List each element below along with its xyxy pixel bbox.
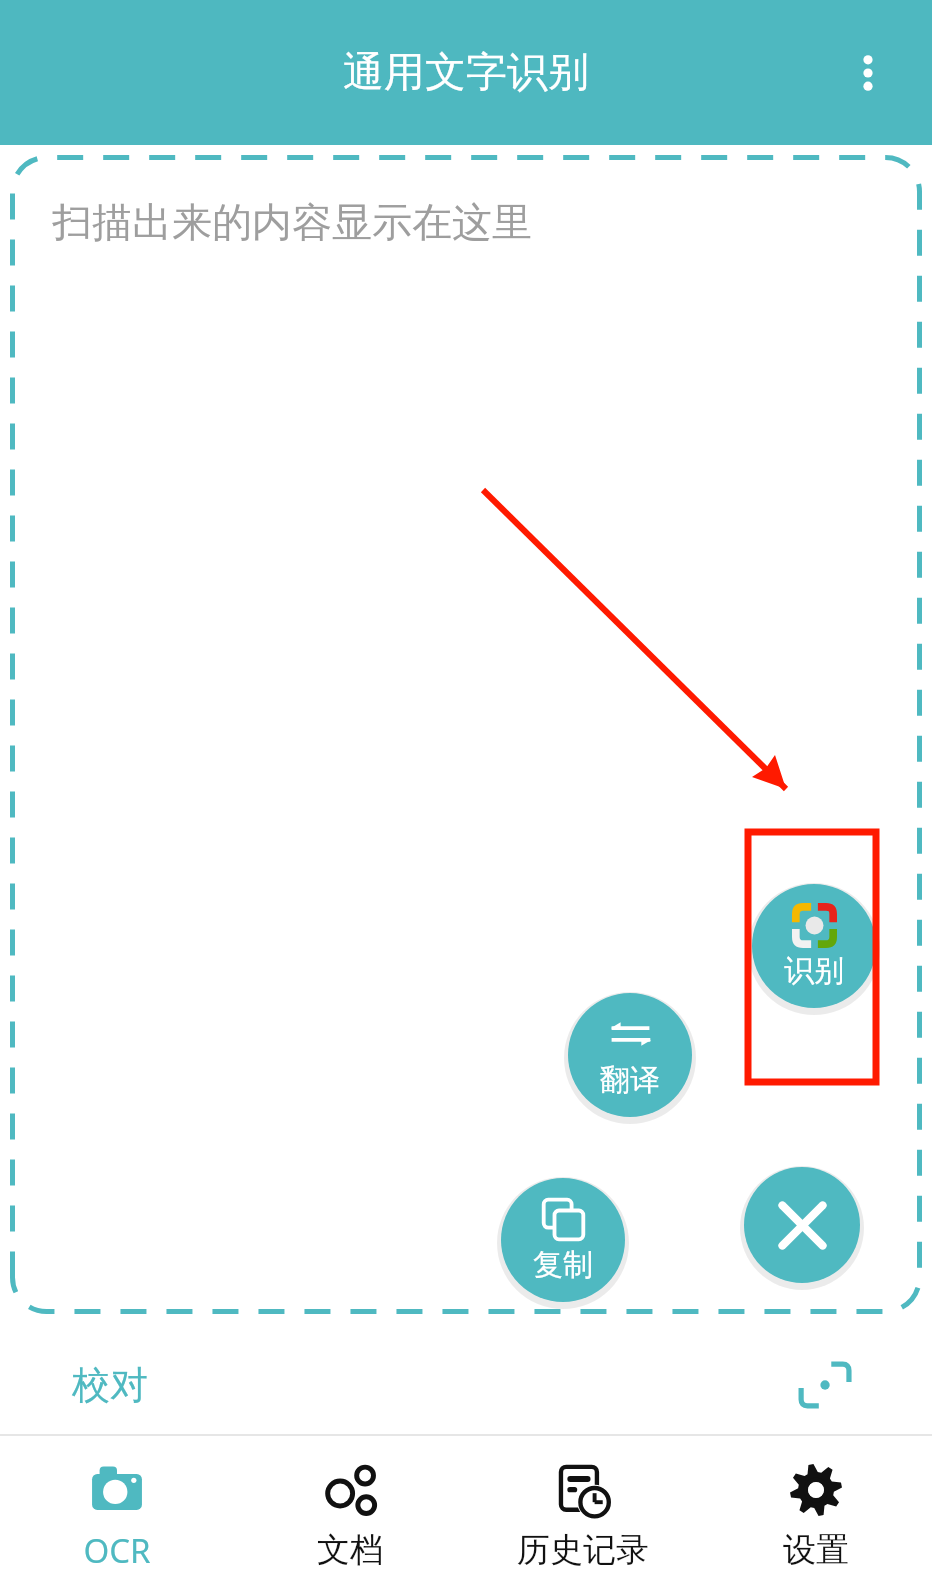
staticText: 历史记录: [517, 1529, 649, 1571]
staticText: 翻译: [600, 1061, 660, 1099]
button[interactable]: 历史记录: [466, 1436, 699, 1596]
staticText: 设置: [783, 1529, 849, 1571]
button[interactable]: More options: [832, 37, 904, 109]
button[interactable]: 文档: [233, 1436, 466, 1596]
staticText: 扫描出来的内容显示在这里: [52, 197, 532, 247]
button[interactable]: 设置: [699, 1436, 932, 1596]
button[interactable]: 翻译: [563, 988, 697, 1122]
staticText: 通用文字识别: [343, 47, 589, 99]
button[interactable]: 复制: [496, 1173, 630, 1307]
button[interactable]: 识别: [747, 879, 881, 1013]
button[interactable]: Close: [739, 1162, 865, 1288]
button[interactable]: Fullscreen: [788, 1349, 860, 1421]
staticText: 识别: [784, 952, 844, 990]
staticText: 文档: [317, 1529, 383, 1571]
staticText: 校对: [72, 1361, 148, 1409]
staticText: 复制: [533, 1246, 593, 1284]
button[interactable]: OCR: [0, 1436, 233, 1596]
staticText: OCR: [83, 1528, 151, 1573]
button[interactable]: 校对: [72, 1361, 148, 1409]
